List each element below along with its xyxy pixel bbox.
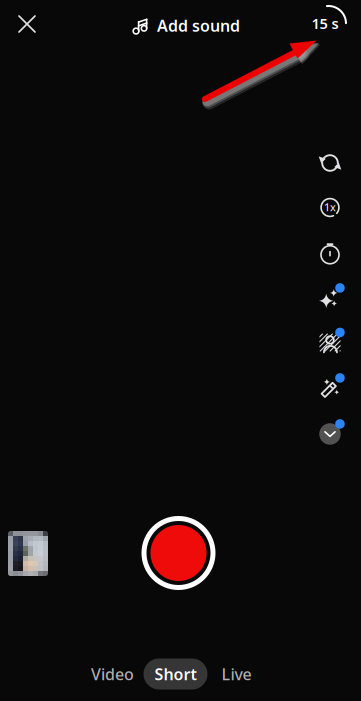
staticText: Add sound: [157, 15, 240, 36]
button[interactable]: Effects: [308, 276, 352, 320]
staticText: 1x: [324, 200, 336, 214]
button[interactable]: More options: [308, 412, 352, 456]
staticText: Live: [221, 663, 251, 685]
button[interactable]: Live: [207, 658, 265, 690]
button[interactable]: Close: [7, 4, 47, 44]
button[interactable]: Retouch: [308, 366, 352, 410]
button[interactable]: Short: [143, 658, 207, 689]
button[interactable]: Flip camera: [308, 141, 352, 185]
button[interactable]: Video: [81, 658, 143, 690]
button[interactable]: Green screen: [308, 320, 352, 364]
button[interactable]: Timer: [308, 231, 352, 275]
button[interactable]: Add sound: [126, 8, 247, 43]
staticText: Video: [91, 663, 134, 685]
button[interactable]: Recording length 15 seconds: [305, 1, 351, 45]
button[interactable]: Playback speed: [308, 185, 352, 229]
button[interactable]: Record: [142, 517, 214, 589]
staticText: Short: [154, 663, 196, 685]
button[interactable]: Open gallery: [8, 531, 48, 576]
staticText: 15 s: [311, 13, 338, 33]
